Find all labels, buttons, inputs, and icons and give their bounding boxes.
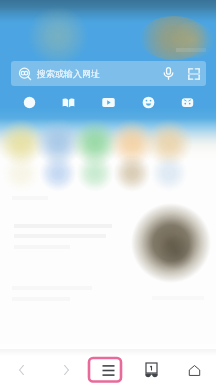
button[interactable]: Back — [0, 354, 44, 384]
button[interactable]: Novels — [57, 91, 79, 113]
button[interactable]: Tabs — [130, 354, 173, 384]
button[interactable]: Menu — [87, 354, 130, 384]
button[interactable]: Home — [173, 354, 216, 384]
button[interactable]: Funny — [137, 91, 159, 113]
button[interactable]: Scan QR code — [181, 61, 206, 86]
button[interactable]: Video — [97, 91, 119, 113]
button[interactable]: Forward — [44, 354, 87, 384]
button[interactable]: 搜索或输入网址 — [11, 61, 206, 86]
button[interactable]: Voice search — [156, 61, 181, 86]
button[interactable]: Games — [176, 91, 198, 113]
button[interactable]: News — [18, 91, 40, 113]
staticText: 搜索或输入网址 — [37, 68, 100, 79]
